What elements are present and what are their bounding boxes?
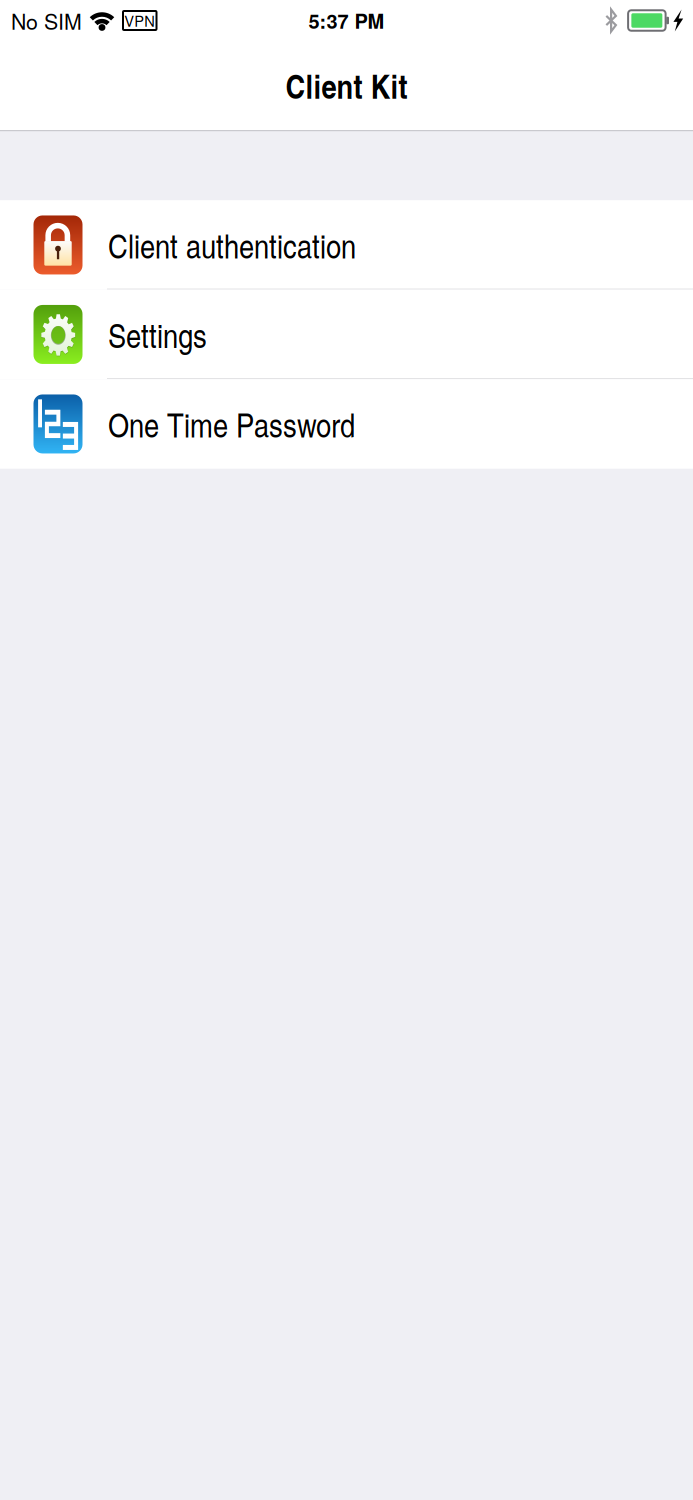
staticText: VPN xyxy=(124,10,155,31)
staticText: Client authentication xyxy=(108,222,356,268)
button[interactable]: One Time Password xyxy=(0,379,693,469)
staticText: Client Kit xyxy=(285,62,407,109)
staticText: 5:37 PM xyxy=(308,6,384,35)
button[interactable]: Client authentication xyxy=(0,200,693,290)
staticText: No SIM xyxy=(11,5,82,36)
button[interactable]: Settings xyxy=(0,290,693,379)
staticText: One Time Password xyxy=(108,401,355,447)
staticText: Settings xyxy=(108,312,207,357)
